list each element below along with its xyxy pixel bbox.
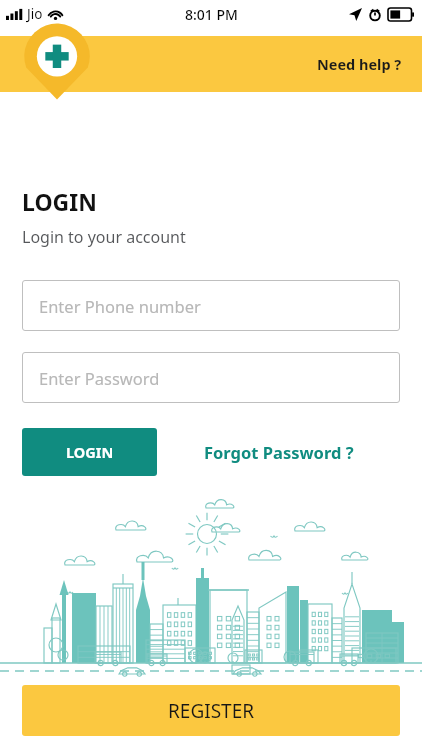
button[interactable]: Forgot Password ? <box>158 431 400 473</box>
button[interactable]: Enter Phone number <box>22 280 400 331</box>
staticText: LOGIN <box>22 186 97 217</box>
staticText: LOGIN <box>66 442 114 462</box>
other: App logo <box>21 22 93 100</box>
staticText: Login to your account <box>22 226 186 248</box>
staticText: Need help ? <box>317 54 402 74</box>
button[interactable]: REGISTER <box>22 685 400 736</box>
button[interactable]: LOGIN <box>22 428 157 476</box>
staticText: Jio <box>27 5 43 23</box>
button[interactable]: Enter Password <box>22 352 400 403</box>
staticText: Enter Phone number <box>39 295 201 317</box>
button[interactable]: Need help ? <box>297 44 422 84</box>
staticText: Enter Password <box>39 367 160 389</box>
staticText: Forgot Password ? <box>204 441 354 463</box>
staticText: REGISTER <box>168 698 255 724</box>
staticText: 8:01 PM <box>185 5 238 24</box>
